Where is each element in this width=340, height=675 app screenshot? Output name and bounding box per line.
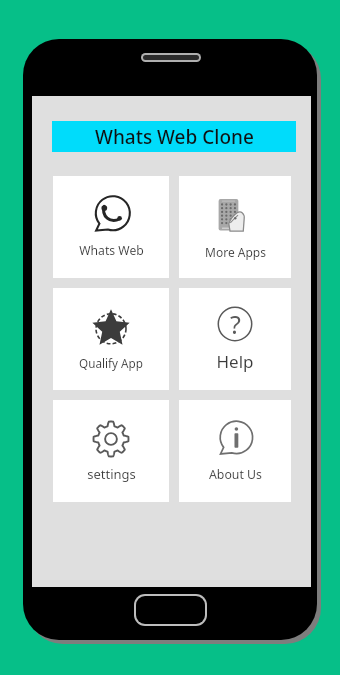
button[interactable]: About Us <box>179 400 291 502</box>
staticText: Whats Web Clone <box>95 124 254 150</box>
staticText: Qualify App <box>79 355 143 371</box>
staticText: Help <box>216 350 254 373</box>
staticText: About Us <box>209 466 262 483</box>
button[interactable]: Home button <box>134 594 207 626</box>
button[interactable]: ? <box>179 288 291 390</box>
staticText: More Apps <box>205 244 266 260</box>
button[interactable]: Whats Web Clone <box>52 121 296 152</box>
staticText: Whats Web <box>79 242 144 259</box>
button[interactable]: More Apps <box>179 176 291 278</box>
button[interactable]: Qualify App <box>53 288 169 390</box>
staticText: settings <box>87 465 136 483</box>
button[interactable]: settings <box>53 400 169 502</box>
button[interactable]: Whats Web <box>53 176 169 278</box>
staticText: ? <box>230 307 241 341</box>
